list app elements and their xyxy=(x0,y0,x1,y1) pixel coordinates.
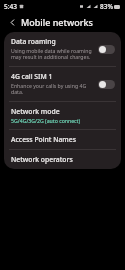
staticText: 5G/4G/3G/2G (auto connect) xyxy=(11,117,81,124)
staticText: Network operators xyxy=(11,155,73,164)
staticText: Access Point Names xyxy=(11,135,76,144)
button[interactable]: Network operators xyxy=(4,150,121,169)
button[interactable]: Toggle xyxy=(98,80,115,89)
button[interactable]: Network mode xyxy=(4,102,121,129)
button[interactable]: Access Point Names xyxy=(4,130,121,149)
staticText: Enhance your calls by using 4G data. xyxy=(11,82,93,96)
staticText: Network mode xyxy=(11,107,60,116)
button[interactable]: 4G call SIM 1 xyxy=(4,67,121,101)
button[interactable]: Back xyxy=(6,16,18,28)
staticText: Using mobile data while roaming may resu… xyxy=(11,47,93,61)
staticText: 4G call SIM 1 xyxy=(11,72,53,81)
staticText: 83% xyxy=(100,2,113,11)
staticText: Mobile networks xyxy=(21,16,93,28)
staticText: Data roaming xyxy=(11,37,56,46)
button[interactable]: Data roaming xyxy=(4,32,121,66)
button[interactable]: Toggle xyxy=(98,45,115,54)
staticText: 5:43 xyxy=(4,2,17,11)
